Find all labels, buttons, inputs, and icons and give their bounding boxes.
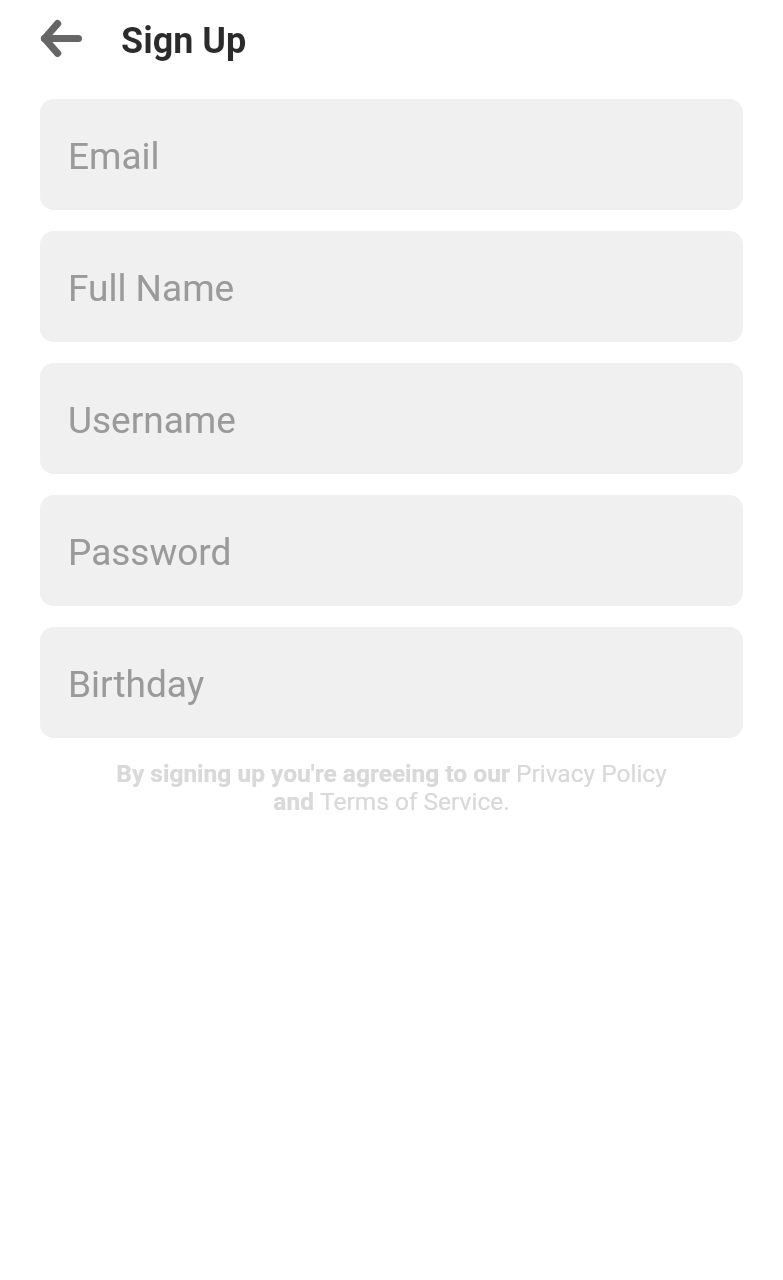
- button[interactable]: Email: [40, 99, 743, 210]
- button[interactable]: Password: [40, 495, 743, 606]
- button[interactable]: Back: [35, 12, 87, 64]
- staticText: Birthday: [68, 663, 205, 706]
- staticText: Sign Up: [121, 20, 247, 62]
- staticText: Full Name: [68, 267, 235, 310]
- staticText: Email: [68, 135, 160, 178]
- staticText: By signing up you're agreeing to our Pri…: [0, 759, 783, 816]
- button[interactable]: Birthday: [40, 627, 743, 738]
- staticText: Password: [68, 531, 232, 574]
- staticText: Username: [68, 399, 236, 442]
- button[interactable]: Full Name: [40, 231, 743, 342]
- button[interactable]: Username: [40, 363, 743, 474]
